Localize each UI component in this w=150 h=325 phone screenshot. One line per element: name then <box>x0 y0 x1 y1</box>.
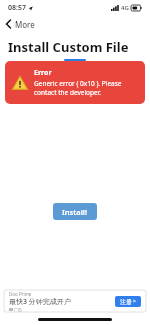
button[interactable]: Doo Prime <box>4 290 146 312</box>
button[interactable]: 注册 <box>115 296 141 307</box>
staticText: > <box>133 298 136 305</box>
staticText: 最快3 分钟完成开户 <box>9 297 71 307</box>
staticText: 广告 <box>14 307 22 312</box>
staticText: Install Custom File <box>8 38 129 56</box>
staticText: 4G <box>121 4 129 12</box>
staticText: More <box>15 19 35 30</box>
staticText: Install! <box>62 207 88 217</box>
staticText: Doo Prime <box>9 291 32 297</box>
button[interactable]: More <box>0 16 150 32</box>
staticText: Generic error ( 0x10 ). Please contact t… <box>34 79 138 97</box>
staticText: 注册 <box>120 298 132 306</box>
other: Warning <box>12 75 28 91</box>
staticText: 08:57 <box>8 3 26 13</box>
staticText: Error <box>34 68 52 78</box>
button[interactable]: Install! <box>53 203 97 220</box>
button[interactable]: Warning <box>5 61 145 104</box>
